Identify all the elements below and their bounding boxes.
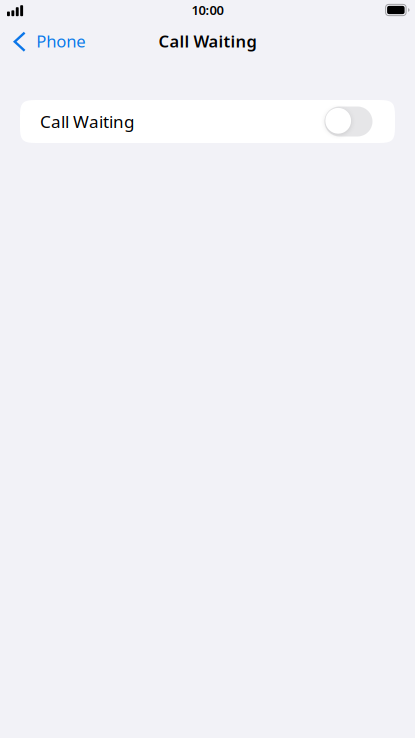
staticText: 10:00 xyxy=(191,1,223,19)
button[interactable]: Call Waiting xyxy=(20,100,395,143)
staticText: Phone xyxy=(36,30,85,52)
button[interactable]: Phone xyxy=(0,25,93,57)
staticText: Call Waiting xyxy=(158,30,256,52)
staticText: Call Waiting xyxy=(40,110,134,133)
